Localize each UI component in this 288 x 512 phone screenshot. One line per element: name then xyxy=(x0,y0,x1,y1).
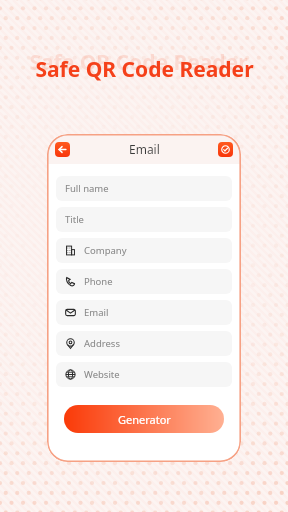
staticText: Title xyxy=(65,213,84,226)
staticText: Full name xyxy=(65,182,109,195)
staticText: Phone xyxy=(84,275,113,288)
button[interactable]: Save xyxy=(218,142,233,157)
button[interactable]: Address xyxy=(56,331,232,356)
staticText: Email xyxy=(84,306,109,319)
staticText: Safe QR Code Reader xyxy=(29,48,248,77)
button[interactable]: Email xyxy=(56,300,232,325)
button[interactable]: Website xyxy=(56,362,232,387)
button[interactable]: Generator xyxy=(64,405,224,433)
button[interactable]: Back xyxy=(55,142,70,157)
staticText: Address xyxy=(84,337,120,350)
button[interactable]: Phone xyxy=(56,269,232,294)
staticText: Safe QR Code Reader xyxy=(35,55,254,84)
staticText: Company xyxy=(84,244,127,257)
button[interactable]: Full name xyxy=(56,176,232,201)
button[interactable]: Company xyxy=(56,238,232,263)
staticText: Generator xyxy=(118,412,171,427)
staticText: Email xyxy=(129,141,160,157)
staticText: Website xyxy=(84,368,120,381)
button[interactable]: Title xyxy=(56,207,232,232)
